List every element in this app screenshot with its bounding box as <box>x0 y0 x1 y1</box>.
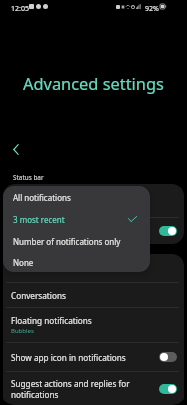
button[interactable]: Show app icon in notifications <box>3 343 184 371</box>
button[interactable]: 3 most recent <box>3 208 150 230</box>
staticText: Status bar <box>13 173 44 182</box>
button[interactable]: On <box>159 384 177 394</box>
staticText: 92% <box>145 4 159 14</box>
button[interactable]: Floating notifications <box>3 308 184 342</box>
button[interactable]: On <box>159 226 177 236</box>
staticText: 12:05 <box>11 4 29 14</box>
button[interactable]: Back <box>4 137 28 161</box>
staticText: Bubbles <box>11 327 34 335</box>
staticText: Suggest actions and replies for notifica… <box>11 378 133 400</box>
button[interactable]: All notifications <box>3 186 150 208</box>
staticText: Advanced settings <box>23 72 164 94</box>
button[interactable]: None <box>3 252 150 272</box>
staticText: None <box>13 257 150 268</box>
button[interactable] <box>3 254 184 282</box>
button[interactable]: Suggest actions and replies for notifica… <box>3 372 184 405</box>
button[interactable] <box>3 184 184 217</box>
button[interactable]: On <box>3 218 184 244</box>
staticText: 3 most recent <box>13 214 128 225</box>
staticText: All notifications <box>13 192 150 203</box>
button[interactable]: Number of notifications only <box>3 230 150 252</box>
staticText: Show app icon in notifications <box>11 352 159 363</box>
staticText: Number of notifications only <box>13 236 150 247</box>
button[interactable]: Off <box>159 352 177 362</box>
staticText: Conversations <box>11 290 66 301</box>
staticText: Floating notifications <box>11 315 92 326</box>
button[interactable]: Conversations <box>3 283 184 307</box>
